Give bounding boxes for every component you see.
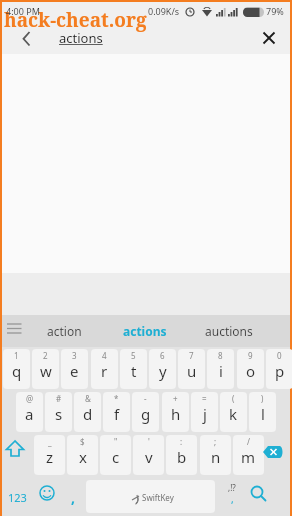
button[interactable]: 7 bbox=[178, 349, 205, 389]
staticText: 123 bbox=[8, 490, 27, 505]
staticText: a bbox=[25, 404, 34, 424]
button[interactable]: auctions bbox=[190, 315, 268, 347]
staticText: r bbox=[101, 361, 108, 381]
staticText: e bbox=[70, 361, 79, 381]
staticText: v bbox=[145, 447, 153, 467]
staticText: $ bbox=[80, 436, 85, 447]
staticText: 1 bbox=[14, 350, 19, 361]
staticText: # bbox=[56, 393, 62, 404]
staticText: + bbox=[173, 393, 178, 404]
staticText: l bbox=[261, 404, 265, 424]
button[interactable]: 0 bbox=[266, 349, 292, 389]
staticText: - bbox=[144, 393, 147, 404]
staticText: 0 bbox=[277, 350, 282, 361]
button[interactable]: @ bbox=[16, 392, 43, 432]
button[interactable] bbox=[34, 478, 60, 516]
button[interactable]: ( bbox=[220, 392, 247, 432]
staticText: , bbox=[71, 488, 75, 507]
button[interactable]: : bbox=[166, 435, 197, 475]
button[interactable]: = bbox=[191, 392, 218, 432]
staticText: , bbox=[231, 492, 234, 506]
staticText: 9 bbox=[248, 350, 253, 361]
button[interactable]: * bbox=[103, 392, 130, 432]
button[interactable] bbox=[254, 24, 284, 52]
staticText: y bbox=[159, 361, 167, 381]
staticText: 8 bbox=[218, 350, 223, 361]
staticText: / bbox=[247, 436, 250, 447]
staticText: s bbox=[55, 404, 63, 424]
staticText: * bbox=[114, 393, 119, 404]
staticText: u bbox=[187, 361, 197, 381]
button[interactable]: action bbox=[28, 315, 100, 347]
staticText: & bbox=[85, 393, 91, 404]
staticText: = bbox=[202, 393, 207, 404]
staticText: auctions bbox=[205, 323, 253, 339]
staticText: z bbox=[46, 447, 54, 467]
staticText: 5 bbox=[131, 350, 136, 361]
staticText: : bbox=[180, 436, 183, 447]
staticText: actions bbox=[123, 323, 167, 339]
staticText: m bbox=[241, 447, 256, 467]
staticText: 79% bbox=[266, 5, 284, 17]
staticText: SwiftKey bbox=[142, 492, 174, 503]
button[interactable]: 8 bbox=[207, 349, 234, 389]
button[interactable]: 3 bbox=[61, 349, 88, 389]
staticText: n bbox=[211, 447, 221, 467]
staticText: d bbox=[83, 404, 93, 424]
button[interactable]: " bbox=[100, 435, 131, 475]
staticText: 7 bbox=[189, 350, 194, 361]
staticText: action bbox=[47, 323, 82, 339]
button[interactable]: , bbox=[62, 478, 84, 516]
staticText: 4:00 PM bbox=[6, 5, 40, 17]
staticText: 2 bbox=[43, 350, 48, 361]
staticText: 0.09K/s bbox=[148, 5, 180, 17]
staticText: ,!? bbox=[228, 482, 236, 493]
button[interactable]: / bbox=[233, 435, 264, 475]
staticText: actions bbox=[59, 29, 103, 47]
staticText: q bbox=[12, 361, 22, 381]
button[interactable]: actions bbox=[106, 315, 184, 347]
staticText: o bbox=[246, 361, 256, 381]
button[interactable]: 6 bbox=[149, 349, 176, 389]
staticText: h bbox=[171, 404, 181, 424]
staticText: x bbox=[79, 447, 87, 467]
button[interactable] bbox=[2, 435, 32, 475]
button[interactable]: 2 bbox=[32, 349, 59, 389]
staticText: " bbox=[114, 436, 118, 447]
button[interactable] bbox=[10, 26, 42, 52]
staticText: ; bbox=[214, 436, 217, 447]
button[interactable]: - bbox=[132, 392, 159, 432]
staticText: j bbox=[203, 404, 207, 424]
staticText: c bbox=[112, 447, 120, 467]
button[interactable]: 5 bbox=[120, 349, 147, 389]
staticText: ' bbox=[148, 436, 150, 447]
staticText: @ bbox=[26, 393, 34, 404]
button[interactable]: 9 bbox=[237, 349, 264, 389]
button[interactable]: ) bbox=[249, 392, 276, 432]
staticText: 3 bbox=[72, 350, 77, 361]
button[interactable] bbox=[244, 478, 274, 516]
staticText: k bbox=[229, 404, 238, 424]
staticText: 6 bbox=[160, 350, 165, 361]
button[interactable]: _ bbox=[34, 435, 65, 475]
button[interactable]: + bbox=[162, 392, 189, 432]
staticText: hack-cheat.org bbox=[4, 7, 147, 33]
button[interactable]: & bbox=[74, 392, 101, 432]
button[interactable]: 4 bbox=[91, 349, 118, 389]
button[interactable]: ,!? bbox=[218, 478, 246, 516]
staticText: f bbox=[114, 404, 120, 424]
button[interactable]: # bbox=[45, 392, 72, 432]
button[interactable]: 123 bbox=[2, 478, 32, 516]
staticText: b bbox=[177, 447, 187, 467]
button[interactable]: ' bbox=[133, 435, 164, 475]
button[interactable]: $ bbox=[67, 435, 98, 475]
button[interactable]: 1 bbox=[3, 349, 30, 389]
staticText: w bbox=[40, 361, 52, 381]
staticText: ) bbox=[261, 393, 264, 404]
button[interactable]: ; bbox=[200, 435, 231, 475]
staticText: t bbox=[131, 361, 137, 381]
staticText: g bbox=[141, 404, 151, 424]
button[interactable]: SwiftKey bbox=[86, 480, 215, 513]
button[interactable] bbox=[258, 435, 290, 475]
staticText: _ bbox=[48, 436, 52, 447]
